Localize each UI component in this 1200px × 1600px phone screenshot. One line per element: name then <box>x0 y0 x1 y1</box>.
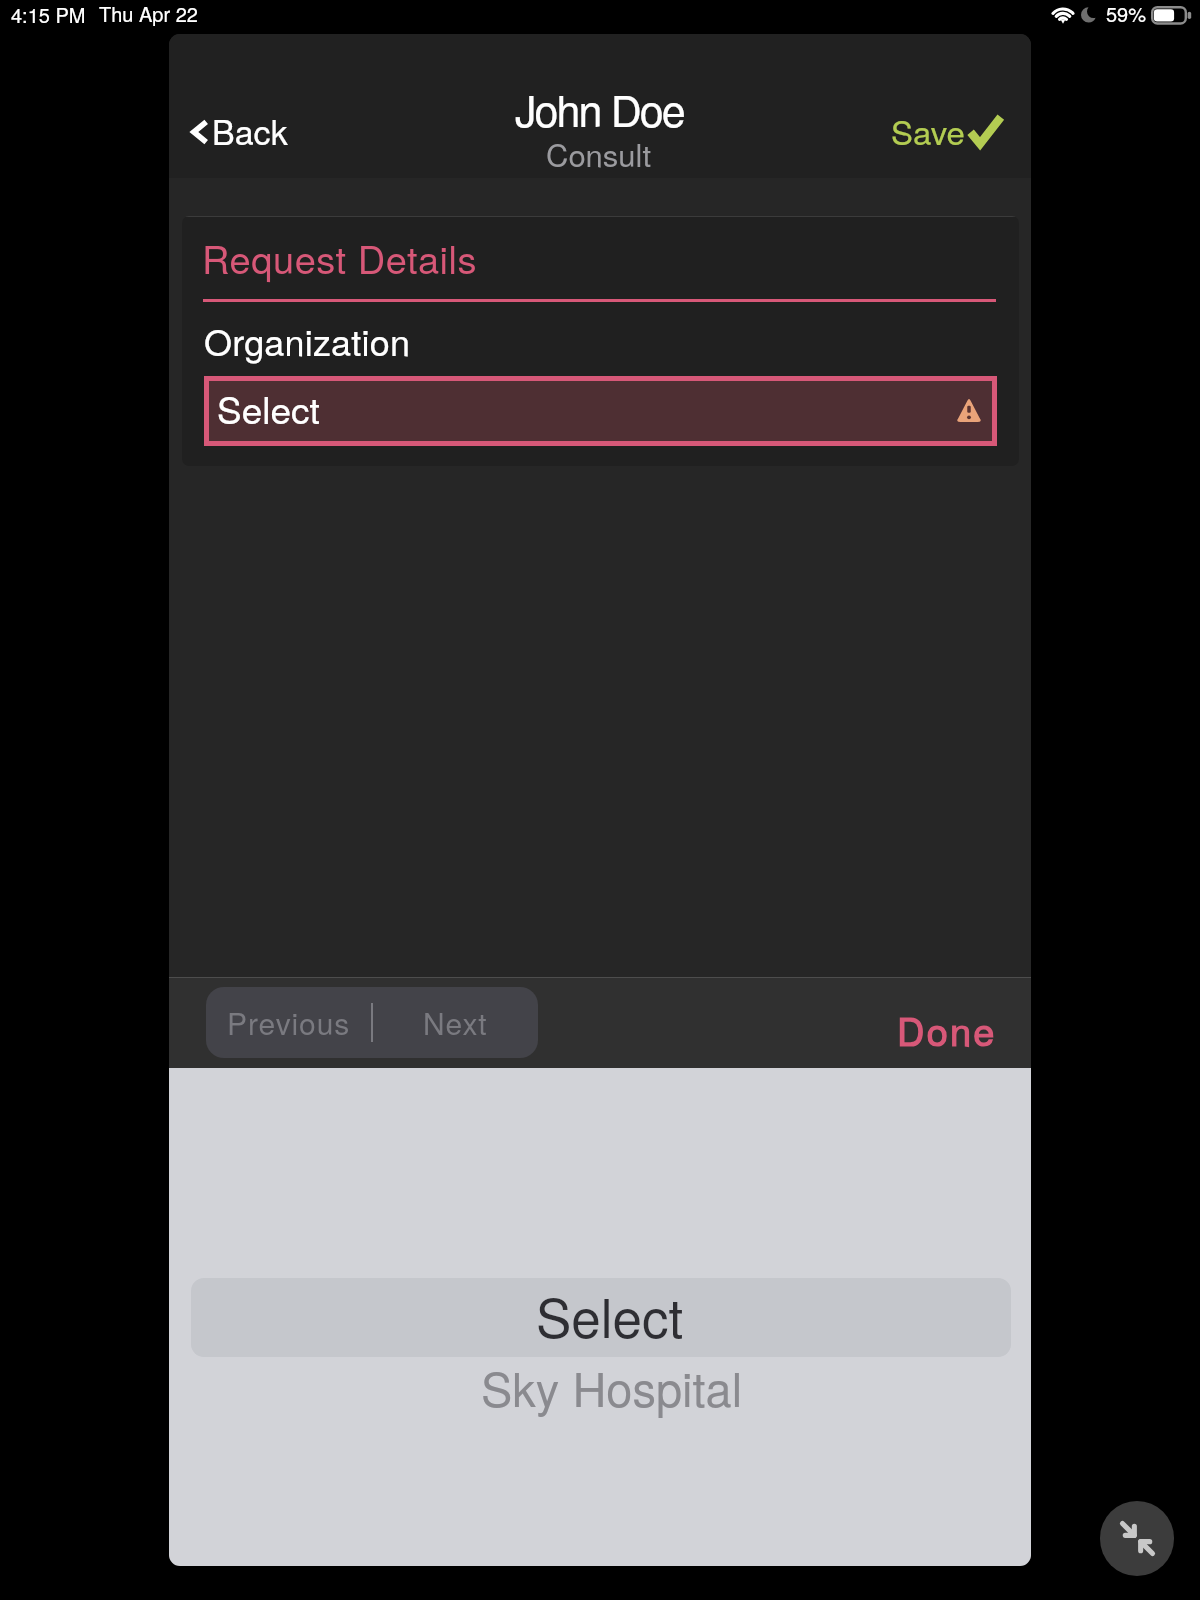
staticText: Consult <box>546 131 652 175</box>
button[interactable]: Previous <box>206 987 371 1058</box>
button[interactable]: Next <box>373 987 538 1058</box>
button[interactable]: Save <box>875 100 1019 162</box>
button[interactable]: Select <box>204 376 997 446</box>
staticText: Select <box>536 1278 684 1353</box>
staticText: Sky Hospital <box>481 1353 743 1420</box>
button[interactable]: Collapse <box>1100 1501 1174 1576</box>
staticText: Previous <box>227 1001 351 1044</box>
staticText: Done <box>897 1002 997 1056</box>
staticText: John Doe <box>515 78 684 140</box>
staticText: 4:15 PM <box>11 0 86 29</box>
button[interactable]: Done <box>875 991 995 1053</box>
staticText: Thu Apr 22 <box>99 0 198 28</box>
staticText: Back <box>212 106 288 155</box>
staticText: Save <box>891 107 965 154</box>
staticText: Organization <box>204 315 411 367</box>
button[interactable]: Back <box>175 102 305 162</box>
button[interactable]: Select <box>191 1278 1011 1357</box>
staticText: Request Details <box>202 230 477 284</box>
staticText: Select <box>217 382 320 435</box>
staticText: Next <box>423 1001 488 1044</box>
staticText: 59% <box>1106 0 1147 28</box>
